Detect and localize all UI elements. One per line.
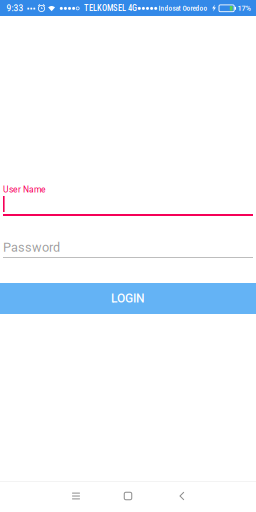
button[interactable]: Recent apps — [62, 482, 90, 510]
button[interactable]: LOGIN — [0, 283, 256, 314]
button[interactable]: Back — [168, 482, 196, 510]
staticText: 17% — [237, 4, 250, 12]
staticText: Indosat Ooredoo — [158, 4, 207, 12]
staticText: LOGIN — [111, 291, 145, 306]
staticText: User Name — [3, 184, 46, 194]
staticText: TELKOMSEL 4G — [84, 3, 137, 13]
button[interactable]: Home — [114, 482, 142, 510]
staticText: Password — [3, 240, 60, 255]
staticText: 9:33 — [6, 3, 23, 13]
